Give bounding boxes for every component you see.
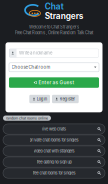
button[interactable]: video chat with strangers	[3, 146, 105, 156]
staticText: Choose Chat room	[12, 65, 51, 70]
staticText: random chat rooms online	[6, 116, 48, 120]
button[interactable]: Enter as Guest	[9, 77, 99, 88]
staticText: free chat rooms for singles	[32, 171, 75, 175]
button[interactable]: Login	[29, 95, 50, 103]
button[interactable]: Register	[52, 95, 79, 103]
staticText: Enter as Guest	[38, 80, 74, 85]
staticText: Welcome to Chat Strangers	[29, 24, 79, 29]
button[interactable]: free chat rooms for singles	[3, 168, 105, 178]
button[interactable]: Choose Chat room	[9, 63, 99, 72]
button[interactable]: live web chats	[3, 124, 105, 134]
staticText: Free Chat Rooms , Online Random Talk Cha…	[15, 30, 93, 35]
button[interactable]: free dating no sign up	[3, 157, 105, 167]
staticText: private chat rooms for singles	[29, 138, 78, 142]
staticText: free dating no sign up	[36, 160, 71, 164]
button[interactable]: private chat rooms for singles	[3, 135, 105, 145]
staticText: Login	[37, 96, 47, 101]
staticText: video chat with strangers	[33, 149, 74, 153]
staticText: Chat	[45, 1, 64, 11]
staticText: Strangers	[45, 11, 84, 21]
staticText: live web chats	[42, 127, 66, 131]
staticText: Write a nickname	[19, 50, 52, 56]
staticText: Register	[59, 96, 75, 101]
